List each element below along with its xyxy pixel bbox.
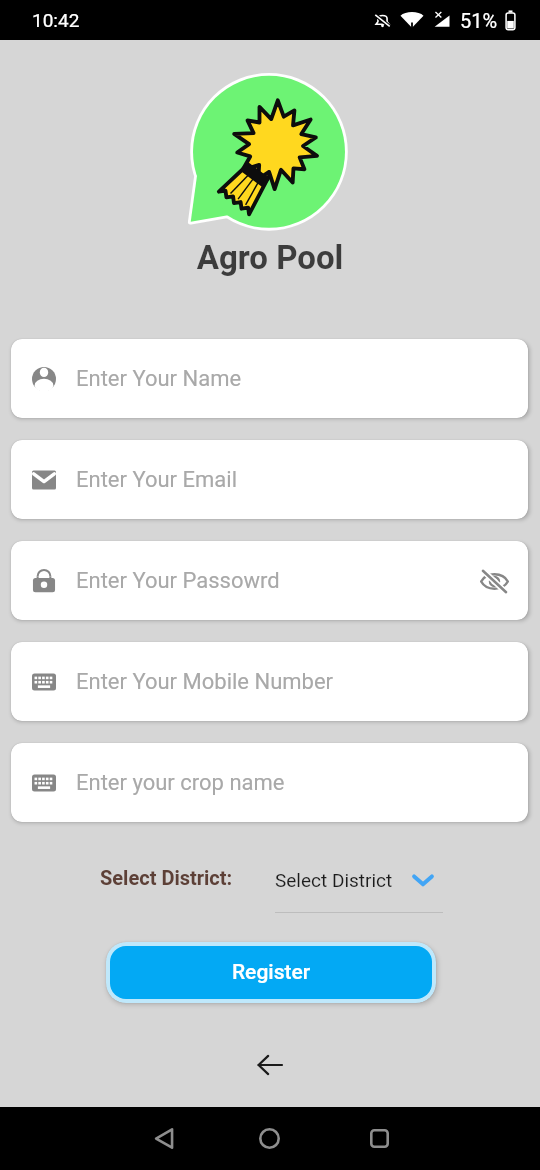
button[interactable]: Enter Your Passowrd: [11, 541, 528, 620]
button[interactable]: Enter your crop name: [11, 743, 528, 822]
staticText: 51%: [460, 9, 498, 32]
button[interactable]: Register: [110, 946, 432, 999]
button[interactable]: Recents: [356, 1115, 403, 1162]
staticText: Agro Pool: [0, 238, 540, 277]
staticText: Enter your crop name: [76, 770, 285, 796]
button[interactable]: Back: [248, 1043, 292, 1087]
staticText: Select District: [275, 869, 393, 891]
staticText: Enter Your Email: [76, 467, 237, 493]
staticText: Register: [232, 960, 311, 985]
button[interactable]: Show password: [476, 563, 512, 599]
staticText: Select District:: [100, 866, 233, 889]
staticText: Enter Your Mobile Number: [76, 669, 334, 695]
button[interactable]: Home: [246, 1115, 293, 1162]
button[interactable]: Enter Your Name: [11, 339, 528, 418]
staticText: Enter Your Name: [76, 366, 242, 392]
button[interactable]: Enter Your Mobile Number: [11, 642, 528, 721]
button[interactable]: Enter Your Email: [11, 440, 528, 519]
button[interactable]: Select District: [275, 854, 443, 906]
button[interactable]: Back: [141, 1115, 188, 1162]
staticText: Enter Your Passowrd: [76, 568, 280, 594]
staticText: 10:42: [32, 9, 80, 31]
